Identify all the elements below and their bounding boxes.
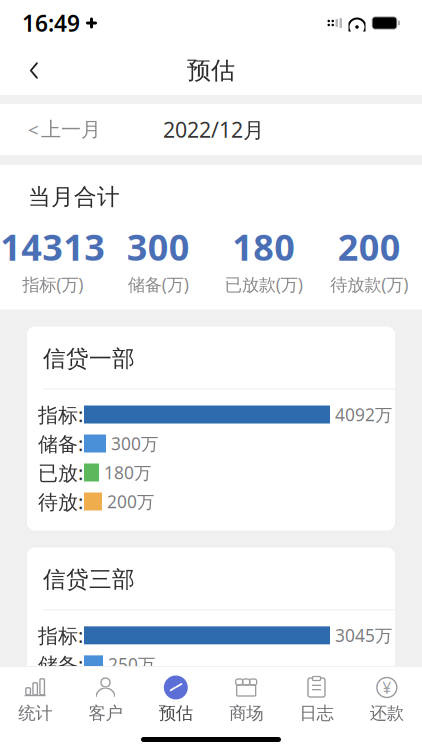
staticText: 250万 [108, 653, 155, 676]
staticText: 300万 [111, 432, 158, 455]
staticText: 信贷一部 [43, 345, 135, 372]
staticText: 3045万 [335, 624, 392, 647]
staticText: 商场 [229, 702, 263, 724]
staticText: 日志 [299, 702, 333, 724]
button[interactable]: 客户 [70, 673, 141, 726]
staticText: 待放: [38, 709, 83, 736]
button[interactable]: < [22, 109, 107, 150]
staticText: 14313 [0, 223, 105, 271]
staticText: 待放款(万) [330, 273, 408, 296]
staticText: 100万 [98, 682, 145, 705]
staticText: 4092万 [335, 403, 392, 426]
staticText: 上一月 [41, 117, 101, 142]
button[interactable]: 信贷三部 [27, 547, 395, 750]
button[interactable]: ¥ [352, 673, 422, 726]
staticText: 200万 [107, 490, 154, 513]
staticText: 300 [127, 223, 190, 271]
staticText: 还款 [370, 702, 404, 724]
staticText: 200 [338, 223, 401, 271]
staticText: 储备: [38, 651, 83, 678]
staticText: 已放: [38, 459, 83, 486]
staticText: 预估 [187, 56, 235, 85]
staticText: ¥ [382, 677, 391, 698]
staticText: 指标: [38, 401, 83, 428]
staticText: 统计 [18, 702, 52, 724]
staticText: 预估 [159, 702, 193, 724]
button[interactable]: 统计 [0, 673, 70, 726]
button[interactable]: 信贷一部 [27, 327, 395, 530]
staticText: 客户 [88, 702, 122, 724]
button[interactable]: Back [12, 48, 56, 92]
staticText: 2022/12月 [163, 115, 264, 144]
staticText: 150万 [103, 711, 150, 734]
staticText: 指标: [38, 622, 83, 649]
staticText: 16:49 [22, 8, 80, 38]
staticText: < [28, 117, 39, 142]
staticText: 当月合计 [28, 183, 120, 211]
staticText: 信贷三部 [43, 565, 135, 593]
button[interactable]: 日志 [281, 673, 352, 726]
staticText: 储备: [38, 430, 83, 457]
staticText: 已放款(万) [225, 273, 303, 296]
staticText: 已放: [38, 680, 83, 707]
staticText: 待放: [38, 488, 83, 515]
button[interactable]: 预估 [141, 673, 211, 726]
staticText: 指标(万) [22, 273, 83, 296]
button[interactable]: 商场 [211, 673, 281, 726]
staticText: 储备(万) [128, 273, 189, 296]
staticText: 180 [232, 223, 295, 271]
staticText: 180万 [104, 461, 151, 484]
